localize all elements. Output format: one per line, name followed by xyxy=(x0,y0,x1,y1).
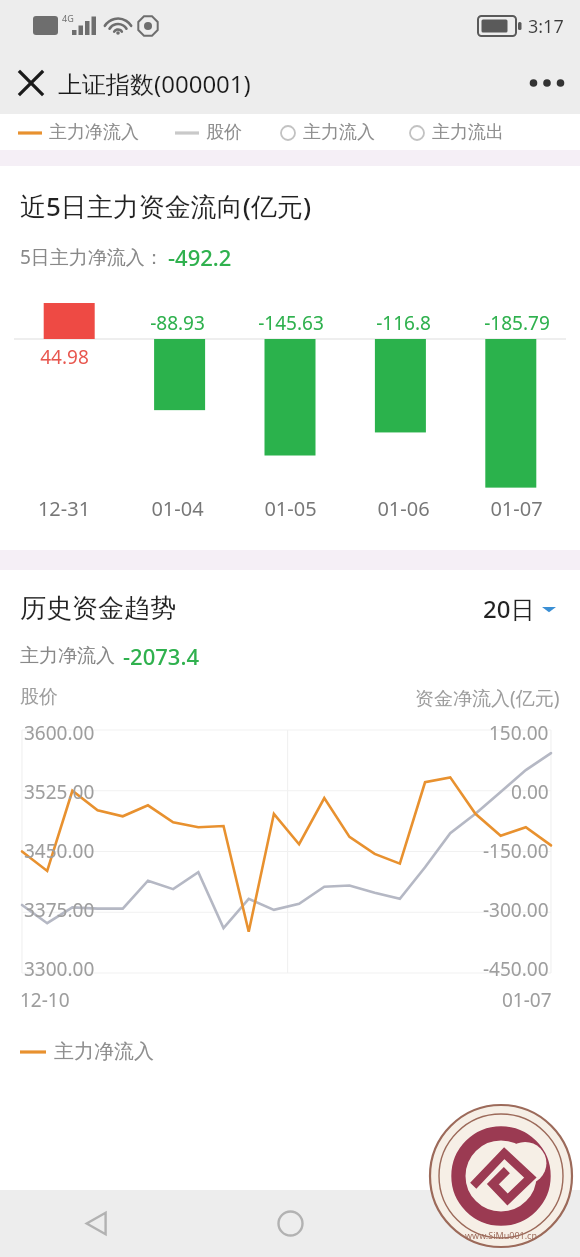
button[interactable]: Back xyxy=(0,1190,194,1257)
button[interactable]: 20日 xyxy=(479,588,560,629)
staticText: 01-05 xyxy=(234,495,347,522)
staticText: 0.00 xyxy=(511,779,549,805)
staticText: 12-10 xyxy=(20,987,70,1013)
staticText: 4G xyxy=(62,12,74,24)
staticText: -88.93 xyxy=(150,310,205,336)
staticText: 历史资金趋势 xyxy=(20,592,176,625)
button[interactable]: Close xyxy=(8,60,54,106)
staticText: 主力净流入 xyxy=(54,1039,154,1064)
staticText: 上证指数(000001) xyxy=(58,67,251,100)
staticText: 3300.00 xyxy=(24,956,95,982)
staticText: 01-06 xyxy=(347,495,460,522)
staticText: 主力净流入 xyxy=(20,644,115,668)
staticText: -492.2 xyxy=(168,242,232,272)
button[interactable]: 主力流出 xyxy=(409,121,504,144)
staticText: 3375.00 xyxy=(24,897,95,923)
staticText: 3525.00 xyxy=(24,779,95,805)
staticText: 股价 xyxy=(20,685,58,709)
staticText: -2073.4 xyxy=(123,641,199,671)
staticText: 5日主力净流入： xyxy=(20,244,164,270)
staticText: 3600.00 xyxy=(24,720,95,746)
staticText: 资金净流入(亿元) xyxy=(415,685,560,711)
button[interactable]: 主力流入 xyxy=(280,121,375,144)
staticText: 01-07 xyxy=(460,495,573,522)
staticText: -116.8 xyxy=(376,310,431,336)
button[interactable]: Home xyxy=(194,1190,387,1257)
staticText: 3:17 xyxy=(528,14,564,39)
button[interactable]: More options xyxy=(522,58,572,108)
staticText: -185.79 xyxy=(484,310,550,336)
button[interactable]: 主力净流入 xyxy=(18,121,139,144)
staticText: 主力流入 xyxy=(303,121,375,144)
staticText: 150.00 xyxy=(489,720,549,746)
button[interactable]: 主力净流入 xyxy=(20,1039,154,1064)
staticText: 12-31 xyxy=(7,495,121,522)
staticText: -150.00 xyxy=(483,838,549,864)
staticText: 44.98 xyxy=(40,344,89,370)
staticText: 近5日主力资金流向(亿元) xyxy=(20,188,312,224)
staticText: -300.00 xyxy=(483,897,549,923)
staticText: 01-07 xyxy=(502,987,552,1013)
staticText: -145.63 xyxy=(258,310,324,336)
button[interactable]: Recent apps xyxy=(387,1190,580,1257)
staticText: www.SiMu001.cn xyxy=(465,1229,538,1241)
staticText: 主力净流入 xyxy=(49,121,139,144)
staticText: 股价 xyxy=(206,121,242,144)
button[interactable]: 股价 xyxy=(175,121,242,144)
staticText: 20日 xyxy=(483,592,535,625)
staticText: -450.00 xyxy=(483,956,549,982)
staticText: 3450.00 xyxy=(24,838,95,864)
staticText: 01-04 xyxy=(121,495,234,522)
staticText: 主力流出 xyxy=(432,121,504,144)
